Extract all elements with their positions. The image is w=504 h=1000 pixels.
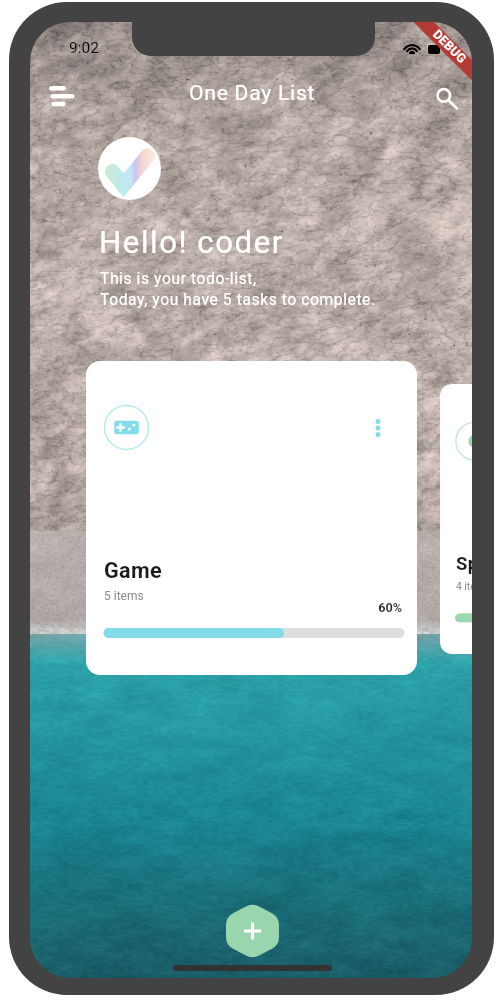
button[interactable]: Game — [86, 361, 417, 675]
staticText: DEBUG — [420, 22, 472, 76]
staticText: Sport — [456, 553, 472, 575]
staticText: 9:02 — [69, 39, 99, 57]
staticText: Hello! coder — [99, 224, 284, 261]
button[interactable]: Search — [421, 72, 467, 118]
staticText: One Day List — [189, 80, 316, 105]
staticText: 5 items — [104, 589, 144, 603]
button[interactable]: Profile — [98, 137, 161, 200]
button[interactable]: Open navigation menu — [38, 70, 84, 116]
staticText: This is your todo-list, Today, you have … — [100, 270, 376, 308]
staticText: 4 items — [456, 580, 472, 592]
staticText: Game — [104, 558, 162, 583]
staticText: 60% — [86, 600, 402, 615]
staticText: 25% — [440, 589, 472, 602]
button[interactable]: Sport — [440, 384, 472, 654]
button[interactable]: Add task — [226, 903, 279, 959]
